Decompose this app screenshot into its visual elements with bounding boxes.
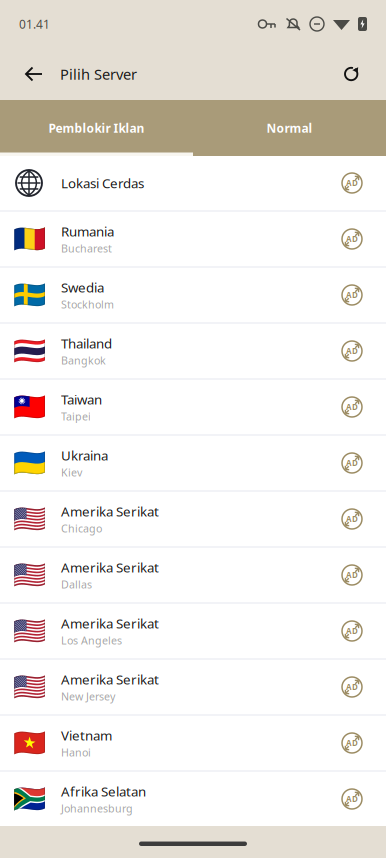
- button[interactable]: 🇸🇪: [0, 268, 386, 322]
- staticText: Vietnam: [61, 727, 112, 744]
- staticText: Taipei: [61, 409, 91, 423]
- staticText: Hanoi: [61, 745, 91, 759]
- staticText: AD: [346, 290, 358, 300]
- button[interactable]: Normal: [193, 100, 386, 156]
- staticText: AD: [346, 178, 358, 188]
- button[interactable]: 🇺🇸: [0, 660, 386, 714]
- staticText: 🇸🇪: [12, 280, 45, 310]
- staticText: AD: [346, 458, 358, 468]
- staticText: Taiwan: [61, 391, 102, 408]
- staticText: Afrika Selatan: [61, 783, 146, 800]
- staticText: Normal: [266, 120, 312, 136]
- button[interactable]: 🇺🇸: [0, 604, 386, 658]
- staticText: 🇺🇸: [12, 504, 45, 534]
- staticText: AD: [346, 346, 358, 356]
- staticText: AD: [346, 626, 358, 636]
- button[interactable]: 🇺🇦: [0, 436, 386, 490]
- staticText: Rumania: [61, 223, 114, 240]
- staticText: AD: [346, 738, 358, 748]
- staticText: 🇹🇭: [12, 336, 45, 366]
- staticText: Pilih Server: [60, 64, 137, 84]
- button[interactable]: Lokasi Cerdas: [0, 156, 386, 210]
- staticText: Chicago: [61, 521, 102, 535]
- staticText: 🇹🇼: [12, 392, 45, 422]
- button[interactable]: 🇷🇴: [0, 212, 386, 266]
- staticText: Bangkok: [61, 353, 106, 367]
- staticText: Amerika Serikat: [61, 671, 159, 688]
- staticText: Johannesburg: [61, 801, 133, 815]
- button[interactable]: 🇹🇼: [0, 380, 386, 434]
- staticText: 01.41: [19, 16, 50, 32]
- staticText: Bucharest: [61, 241, 112, 255]
- staticText: Ukraina: [61, 447, 108, 464]
- staticText: AD: [346, 514, 358, 524]
- staticText: 🇻🇳: [12, 728, 45, 758]
- button[interactable]: Pemblokir Iklan: [0, 100, 193, 156]
- staticText: Pemblokir Iklan: [48, 120, 144, 136]
- staticText: Swedia: [61, 279, 104, 296]
- button[interactable]: 🇿🇦: [0, 772, 386, 826]
- staticText: Dallas: [61, 577, 92, 591]
- staticText: 🇿🇦: [12, 784, 45, 814]
- button[interactable]: Refresh: [332, 55, 378, 92]
- staticText: 🇺🇦: [12, 448, 45, 478]
- staticText: Lokasi Cerdas: [61, 174, 144, 192]
- button[interactable]: 🇺🇸: [0, 548, 386, 602]
- button[interactable]: 🇹🇭: [0, 324, 386, 378]
- staticText: AD: [346, 402, 358, 412]
- button[interactable]: 🇺🇸: [0, 492, 386, 546]
- button[interactable]: Back: [8, 54, 53, 94]
- staticText: Kiev: [61, 465, 82, 479]
- staticText: Thailand: [61, 335, 112, 352]
- staticText: 🇷🇴: [12, 224, 45, 254]
- staticText: AD: [346, 234, 358, 244]
- staticText: AD: [346, 570, 358, 580]
- staticText: 🇺🇸: [12, 672, 45, 702]
- staticText: 🇺🇸: [12, 616, 45, 646]
- button[interactable]: 🇻🇳: [0, 716, 386, 770]
- staticText: Amerika Serikat: [61, 559, 159, 576]
- staticText: 🇺🇸: [12, 560, 45, 590]
- staticText: Stockholm: [61, 297, 114, 311]
- staticText: Amerika Serikat: [61, 615, 159, 632]
- staticText: New Jersey: [61, 689, 115, 703]
- staticText: AD: [346, 794, 358, 804]
- staticText: AD: [346, 682, 358, 692]
- staticText: Los Angeles: [61, 633, 122, 647]
- staticText: Amerika Serikat: [61, 503, 159, 520]
